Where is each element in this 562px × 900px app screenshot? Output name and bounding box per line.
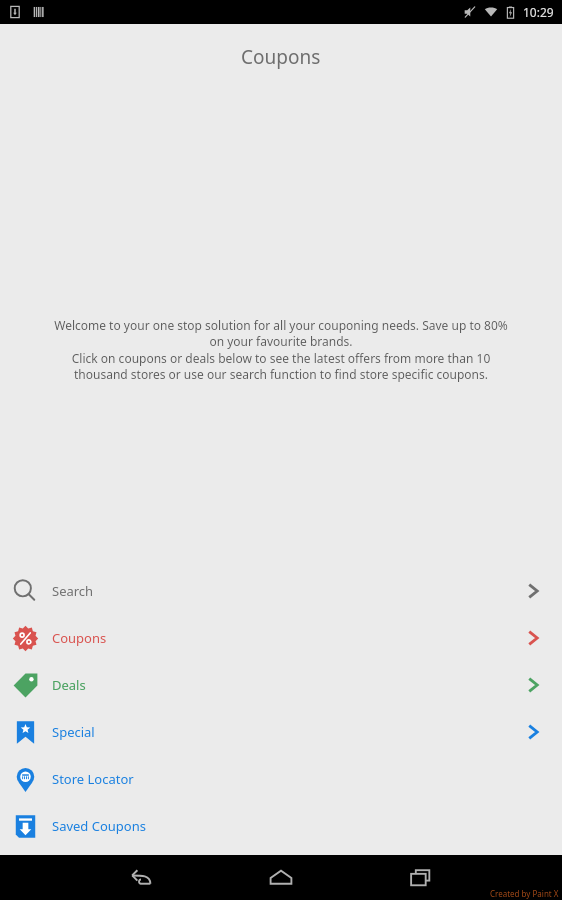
button[interactable]: Coupons xyxy=(0,614,562,661)
button[interactable]: Deals xyxy=(0,661,562,708)
button[interactable]: Special xyxy=(0,708,562,755)
staticText: Coupons xyxy=(52,629,107,647)
staticText: Search xyxy=(52,582,94,600)
button[interactable]: Back xyxy=(119,856,163,900)
button[interactable]: Recent apps xyxy=(399,856,443,900)
staticText: Store Locator xyxy=(52,770,134,788)
button[interactable]: Saved Coupons xyxy=(0,802,562,849)
staticText: Deals xyxy=(52,676,86,694)
staticText: Saved Coupons xyxy=(52,817,146,835)
staticText: Special xyxy=(52,723,95,741)
staticText: Welcome to your one stop solution for al… xyxy=(52,317,510,350)
staticText: 10:29 xyxy=(523,4,554,20)
staticText: Click on coupons or deals below to see t… xyxy=(52,350,510,383)
button[interactable]: Search xyxy=(0,567,562,614)
button[interactable]: Store Locator xyxy=(0,755,562,802)
staticText: Coupons xyxy=(241,44,321,70)
staticText: Created by Paint X xyxy=(490,888,559,899)
button[interactable]: Home xyxy=(259,856,303,900)
